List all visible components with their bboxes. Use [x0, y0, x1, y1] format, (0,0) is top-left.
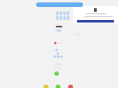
button[interactable]: Success: [56, 85, 61, 88]
button[interactable]: Header: [36, 2, 83, 7]
button[interactable]: Error: [68, 85, 73, 88]
button[interactable]: Warning: [43, 85, 48, 88]
button[interactable]: Tag: [57, 30, 61, 32]
button[interactable]: Status: [54, 71, 59, 76]
